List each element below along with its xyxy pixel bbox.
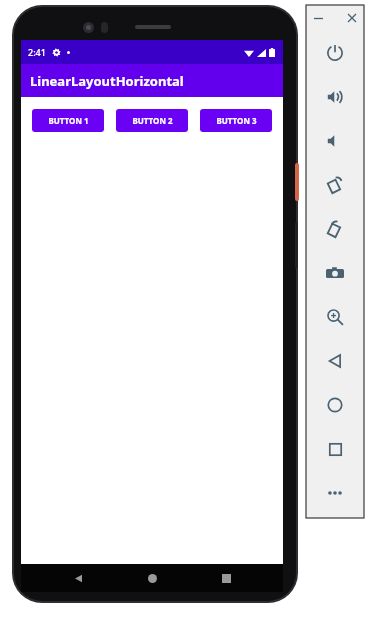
staticText: BUTTON 1 bbox=[48, 115, 89, 126]
button[interactable]: Back bbox=[306, 339, 364, 383]
button[interactable]: Rotate left bbox=[306, 163, 364, 207]
button[interactable]: Volume down bbox=[306, 119, 364, 163]
staticText: BUTTON 3 bbox=[216, 115, 257, 126]
button[interactable]: Zoom bbox=[306, 295, 364, 339]
button[interactable]: Back bbox=[73, 573, 84, 584]
staticText: LinearLayoutHorizontal bbox=[30, 72, 184, 90]
button[interactable]: More bbox=[306, 471, 364, 515]
button[interactable]: BUTTON 2 bbox=[116, 109, 188, 132]
button[interactable]: Power bbox=[306, 31, 364, 75]
staticText: 2:41 bbox=[28, 46, 46, 58]
button[interactable]: Overview bbox=[306, 427, 364, 471]
button[interactable]: Close bbox=[343, 9, 361, 27]
button[interactable]: Home bbox=[306, 383, 364, 427]
button[interactable]: Rotate right bbox=[306, 207, 364, 251]
button[interactable]: BUTTON 3 bbox=[200, 109, 272, 132]
button[interactable]: Take screenshot bbox=[306, 251, 364, 295]
staticText: BUTTON 2 bbox=[132, 115, 173, 126]
button[interactable]: Volume up bbox=[306, 75, 364, 119]
button[interactable]: BUTTON 1 bbox=[32, 109, 104, 132]
button[interactable]: Minimize bbox=[309, 9, 327, 27]
button[interactable]: Home bbox=[148, 574, 157, 583]
